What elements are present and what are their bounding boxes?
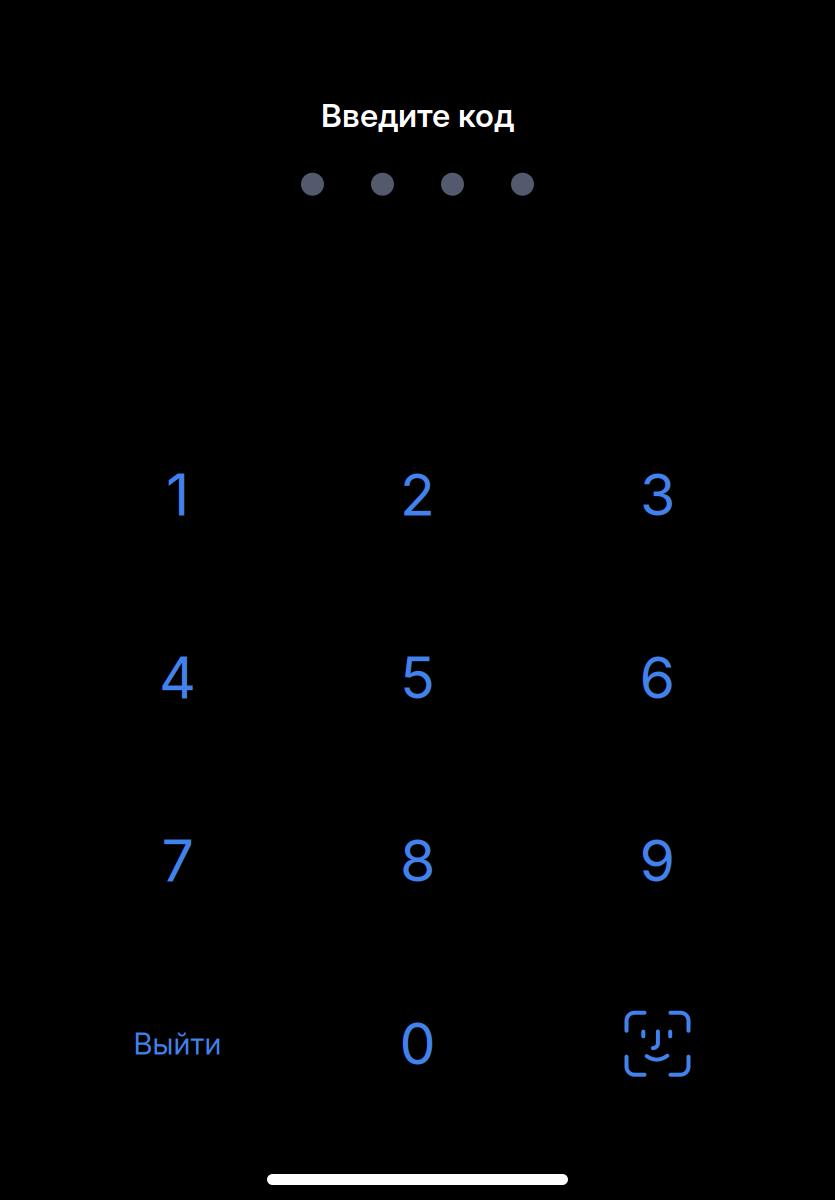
- button[interactable]: Face ID: [577, 984, 737, 1104]
- button[interactable]: 5: [337, 618, 497, 738]
- button[interactable]: 2: [337, 435, 497, 555]
- staticText: 6: [639, 643, 675, 712]
- staticText: 4: [159, 643, 196, 712]
- button[interactable]: 4: [97, 618, 257, 738]
- staticText: 5: [400, 643, 435, 712]
- staticText: 0: [399, 1009, 435, 1078]
- staticText: Выйти: [133, 1026, 221, 1061]
- staticText: 8: [400, 826, 435, 895]
- button[interactable]: 9: [577, 801, 737, 921]
- button[interactable]: Выйти: [97, 984, 257, 1104]
- button[interactable]: 1: [97, 435, 257, 555]
- staticText: Введите код: [321, 96, 514, 135]
- button[interactable]: 3: [577, 435, 737, 555]
- staticText: 2: [400, 460, 435, 529]
- button[interactable]: 7: [97, 801, 257, 921]
- button[interactable]: 8: [337, 801, 497, 921]
- staticText: 9: [639, 826, 675, 895]
- staticText: 1: [166, 460, 189, 529]
- button[interactable]: 6: [577, 618, 737, 738]
- staticText: 7: [161, 826, 193, 895]
- staticText: 3: [640, 460, 675, 529]
- button[interactable]: 0: [337, 984, 497, 1104]
